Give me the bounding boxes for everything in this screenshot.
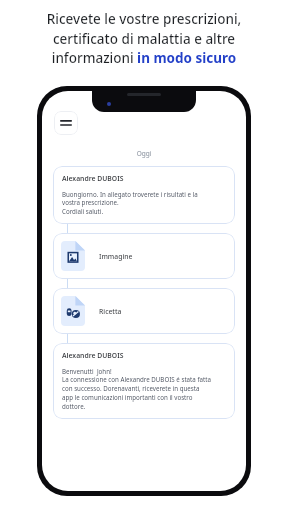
- staticText: Immagine: [99, 252, 133, 261]
- button[interactable]: Alexandre DUBOIS: [53, 343, 235, 419]
- staticText: Oggi: [42, 149, 246, 158]
- staticText: Benvenutti John! La connessione con Alex…: [62, 367, 211, 411]
- button[interactable]: Ricetta: [53, 288, 235, 334]
- staticText: Ricevete le vostre prescrizioni, certifi…: [18, 10, 270, 67]
- button[interactable]: Immagine: [53, 233, 235, 279]
- staticText: Alexandre DUBOIS: [62, 351, 124, 360]
- button[interactable]: Menu: [54, 111, 78, 135]
- staticText: Buongiorno. In allegato troverete i risu…: [62, 190, 198, 216]
- button[interactable]: Alexandre DUBOIS: [53, 166, 235, 224]
- staticText: Ricetta: [99, 307, 122, 316]
- staticText: Alexandre DUBOIS: [62, 174, 124, 183]
